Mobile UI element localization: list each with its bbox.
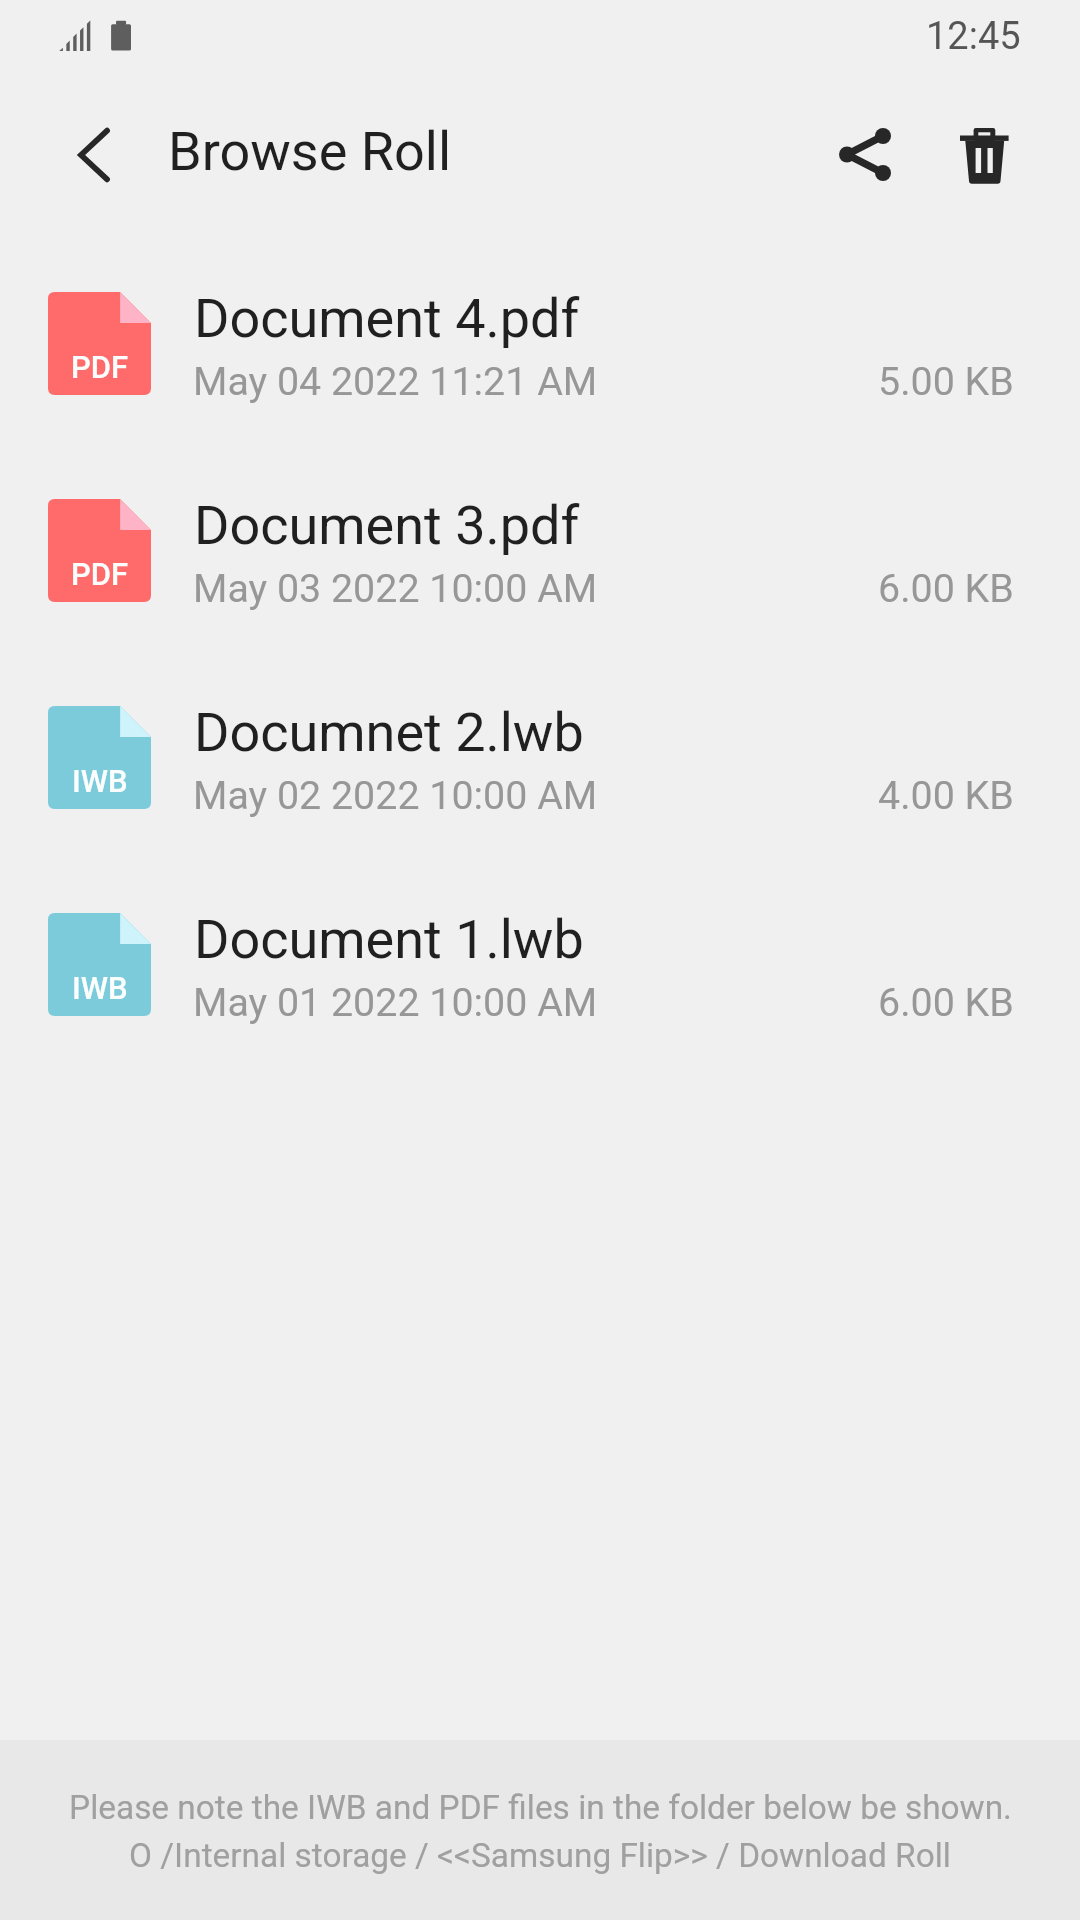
- staticText: Document 1.lwb: [194, 908, 584, 971]
- staticText: 6.00 KB: [878, 565, 1014, 611]
- button[interactable]: PDF: [0, 475, 1080, 682]
- staticText: 12:45: [926, 14, 1021, 59]
- button[interactable]: Back: [64, 125, 124, 185]
- staticText: May 03 2022 10:00 AM: [193, 565, 598, 611]
- button[interactable]: Share: [826, 115, 906, 195]
- staticText: Documnet 2.lwb: [194, 701, 584, 764]
- staticText: O /Internal storage / <<Samsung Flip>> /…: [129, 1836, 951, 1875]
- staticText: Document 3.pdf: [194, 494, 580, 557]
- staticText: May 04 2022 11:21 AM: [193, 358, 598, 404]
- staticText: IWB: [72, 970, 128, 1006]
- button[interactable]: Delete: [944, 115, 1025, 196]
- staticText: Document 4.pdf: [194, 287, 580, 350]
- button[interactable]: IWB: [0, 889, 1080, 1096]
- staticText: IWB: [72, 763, 128, 799]
- staticText: Browse Roll: [168, 120, 452, 183]
- staticText: 6.00 KB: [878, 979, 1014, 1025]
- staticText: May 01 2022 10:00 AM: [193, 979, 598, 1025]
- staticText: 5.00 KB: [878, 358, 1014, 404]
- button[interactable]: IWB: [0, 682, 1080, 889]
- button[interactable]: PDF: [0, 268, 1080, 475]
- staticText: PDF: [71, 556, 129, 592]
- staticText: Please note the IWB and PDF files in the…: [69, 1788, 1012, 1827]
- staticText: May 02 2022 10:00 AM: [193, 772, 598, 818]
- staticText: PDF: [71, 349, 129, 385]
- staticText: 4.00 KB: [878, 772, 1014, 818]
